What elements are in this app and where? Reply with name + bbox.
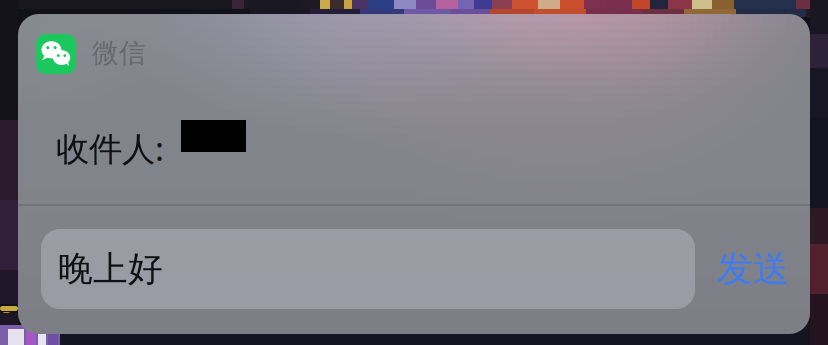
button[interactable]: 晚上好	[41, 229, 695, 309]
button[interactable]: 发送	[697, 229, 809, 309]
staticText: 发送	[717, 247, 789, 291]
staticText: 收件人:	[56, 126, 164, 170]
staticText: 微信	[92, 37, 146, 69]
staticText: 晚上好	[58, 248, 163, 290]
